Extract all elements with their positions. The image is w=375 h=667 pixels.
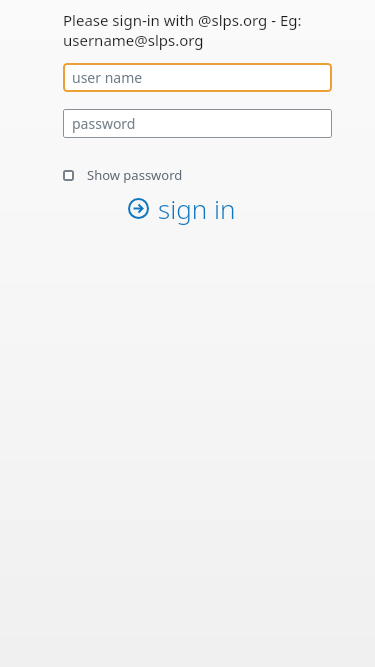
staticText: password [72, 114, 136, 133]
staticText: sign in [158, 191, 236, 226]
staticText: user name [72, 68, 143, 87]
staticText: Show password [87, 166, 183, 184]
staticText: Please sign-in with @slps.org - Eg: user… [63, 10, 302, 50]
button[interactable]: user name [63, 63, 332, 92]
button[interactable]: sign in [128, 191, 236, 226]
button[interactable]: password [63, 109, 332, 138]
button[interactable]: Show password [63, 166, 183, 184]
